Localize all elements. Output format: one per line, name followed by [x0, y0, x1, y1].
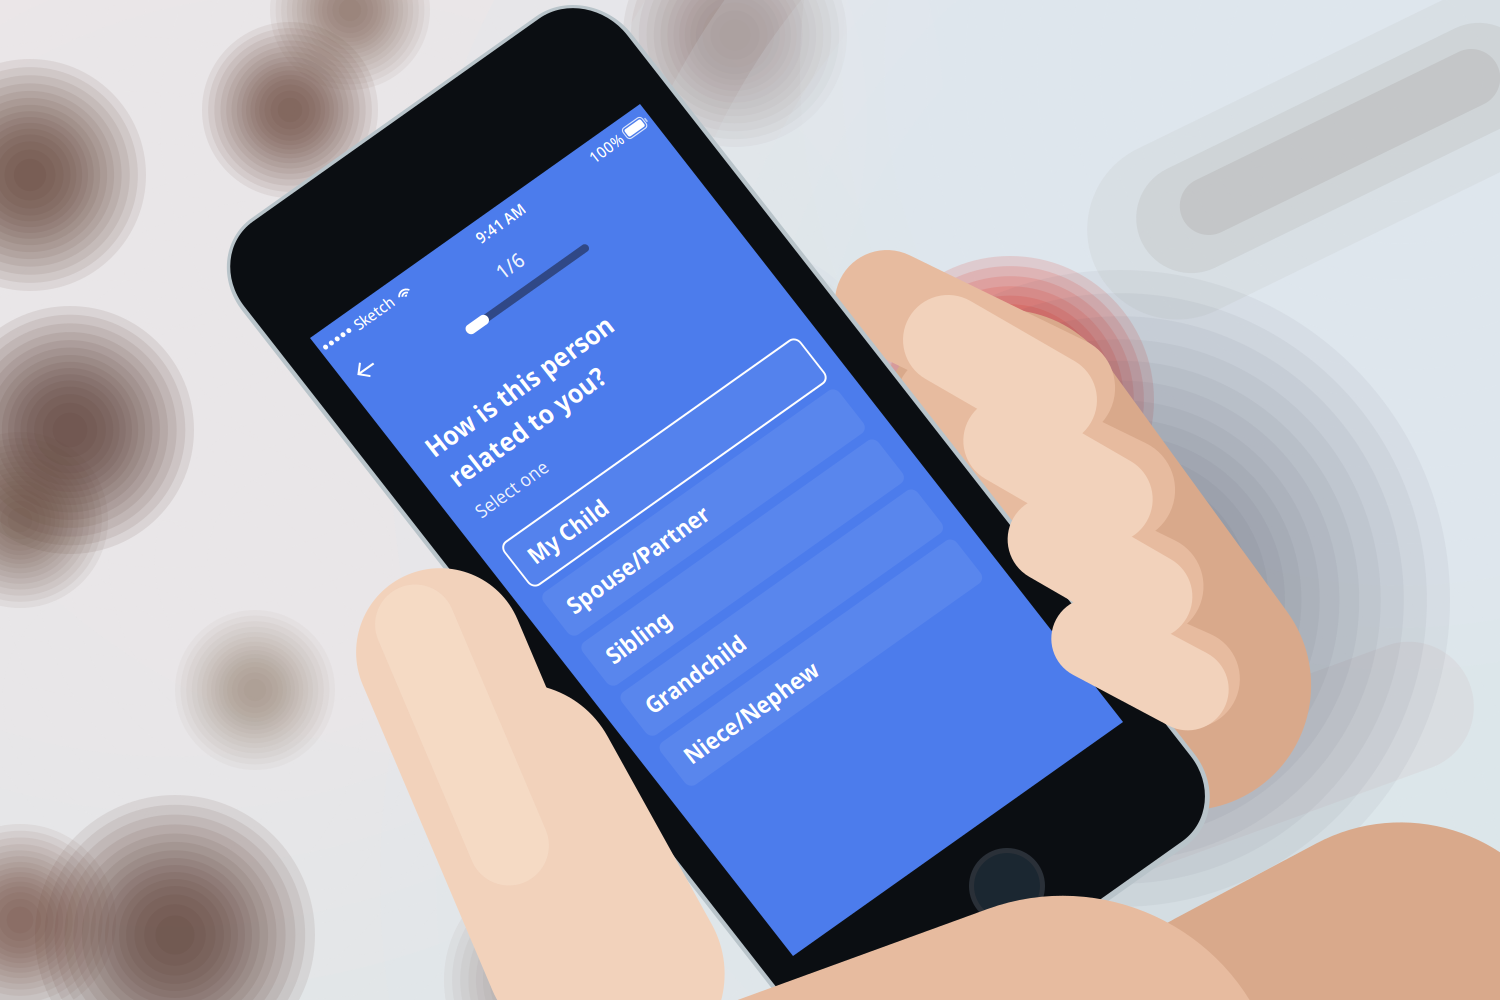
staticText: How is this person [22, 121, 229, 151]
button[interactable]: Back [2, 31, 46, 67]
button[interactable]: My Child [20, 238, 356, 284]
button[interactable]: Spouse/Partner [20, 292, 356, 338]
staticText: My Child [35, 248, 121, 274]
staticText: Sibling [35, 356, 103, 382]
staticText: 100% [307, 5, 342, 23]
staticText: Niece/Nephew [35, 464, 182, 490]
staticText: Select one [22, 193, 100, 214]
staticText: Grandchild [35, 410, 144, 436]
button[interactable]: Grandchild [20, 400, 356, 446]
button[interactable]: Niece/Nephew [20, 454, 356, 500]
staticText: Spouse/Partner [35, 302, 191, 328]
staticText: related to you? [22, 153, 194, 183]
button[interactable]: Sibling [20, 346, 356, 392]
